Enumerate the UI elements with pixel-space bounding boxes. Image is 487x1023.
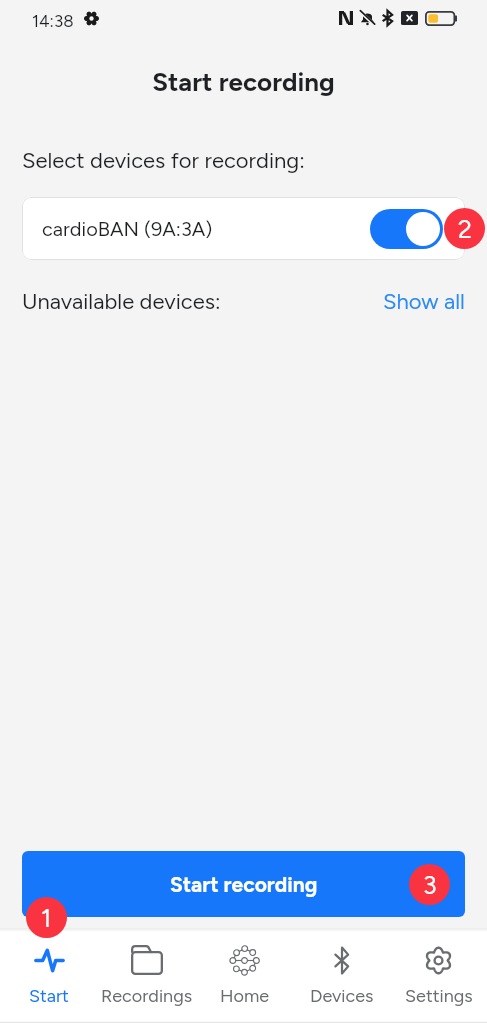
staticText: Settings (405, 985, 473, 1007)
other: Step 2 (444, 208, 485, 249)
button[interactable]: Start recording (22, 851, 465, 917)
button[interactable]: Settings (390, 928, 487, 1023)
other: Step 3 (409, 864, 450, 905)
staticText: Start (29, 985, 69, 1007)
staticText: 3 (423, 870, 437, 900)
staticText: 14:38 (32, 11, 74, 31)
staticText: 2 (458, 214, 472, 244)
button[interactable]: Home (196, 928, 293, 1023)
button[interactable]: Devices (293, 928, 390, 1023)
button[interactable]: cardioBAN (9A:3A) (22, 197, 465, 260)
staticText: 1 (41, 903, 52, 933)
staticText: Select devices for recording: (22, 147, 305, 173)
staticText: Devices (310, 985, 374, 1007)
other: Step 1 (26, 897, 67, 938)
staticText: Start recording (0, 66, 487, 97)
staticText: Unavailable devices: (22, 288, 221, 314)
staticText: Home (220, 985, 270, 1007)
staticText: Recordings (101, 985, 193, 1007)
button[interactable]: Show all (383, 288, 487, 314)
staticText: cardioBAN (9A:3A) (42, 217, 213, 241)
staticText: Start recording (170, 872, 318, 897)
button[interactable]: Start (0, 928, 98, 1023)
button[interactable]: Enable cardioBAN (370, 209, 443, 249)
button[interactable]: Recordings (98, 928, 196, 1023)
